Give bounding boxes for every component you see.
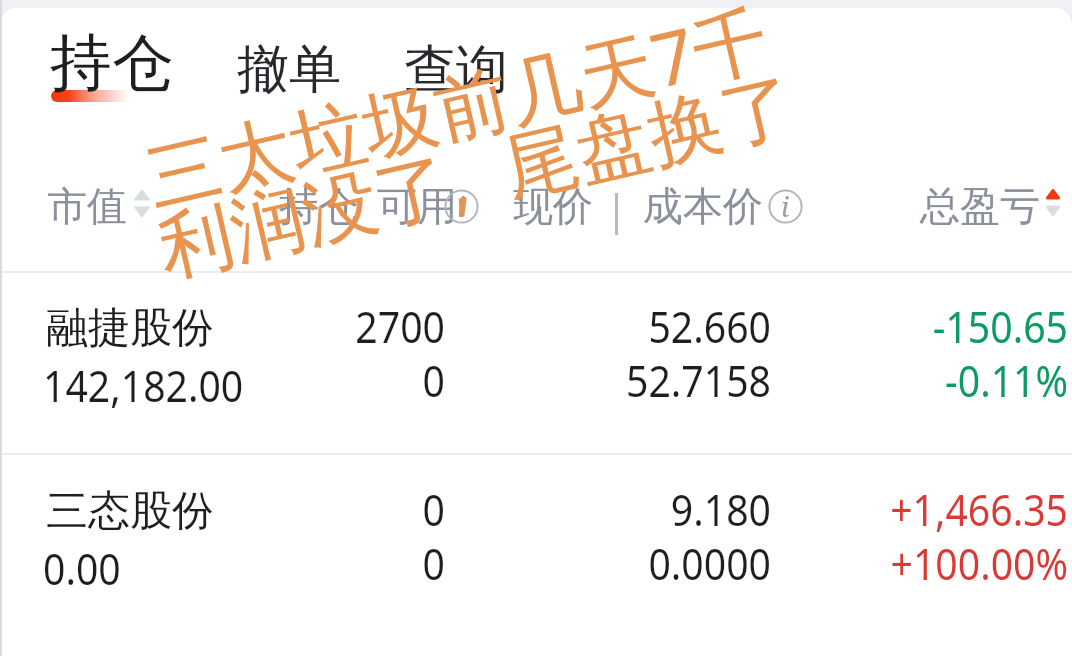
- staticText: 142,182.00: [43, 356, 243, 415]
- staticText: 0: [258, 351, 445, 410]
- staticText: 成本价: [643, 181, 763, 231]
- button[interactable]: 总盈亏: [912, 181, 1048, 231]
- staticText: 持仓: [50, 24, 174, 102]
- other: More information: [768, 189, 803, 224]
- staticText: i: [457, 188, 466, 223]
- button[interactable]: 市值: [39, 181, 135, 231]
- staticText: 可用: [377, 181, 457, 231]
- button[interactable]: 可用: [369, 181, 465, 231]
- staticText: 52.660: [524, 297, 771, 356]
- staticText: 现价: [513, 181, 593, 231]
- staticText: 查询: [404, 37, 508, 103]
- button[interactable]: 融捷股份: [0, 302, 1072, 442]
- staticText: 市值: [47, 181, 127, 231]
- staticText: 三太垃圾前几天7千: [136, 0, 777, 226]
- button[interactable]: 撤单: [229, 28, 349, 112]
- staticText: -0.11%: [769, 351, 1068, 410]
- staticText: +1,466.35: [769, 480, 1068, 539]
- button[interactable]: 持仓: [42, 15, 182, 111]
- staticText: 三态股份: [46, 485, 214, 538]
- staticText: +100.00%: [769, 534, 1068, 593]
- staticText: 利润没了, 尾盘换了: [148, 52, 805, 296]
- button[interactable]: 现价: [505, 181, 601, 231]
- button[interactable]: 持仓: [271, 181, 367, 231]
- staticText: 0: [258, 480, 445, 539]
- staticText: 融捷股份: [46, 302, 214, 355]
- staticText: 0.00: [43, 539, 121, 598]
- button[interactable]: 成本价: [635, 181, 771, 231]
- staticText: 9.180: [524, 480, 771, 539]
- staticText: 52.7158: [524, 351, 771, 410]
- button[interactable]: 查询: [396, 28, 516, 112]
- staticText: 撤单: [237, 37, 341, 103]
- staticText: 0: [258, 534, 445, 593]
- staticText: 持仓: [279, 181, 359, 231]
- staticText: 总盈亏: [920, 181, 1040, 231]
- staticText: -150.65: [769, 297, 1068, 356]
- staticText: 0.0000: [524, 534, 771, 593]
- button[interactable]: 三态股份: [0, 485, 1072, 625]
- staticText: 2700: [258, 297, 445, 356]
- staticText: i: [781, 188, 790, 223]
- other: More information: [444, 189, 479, 224]
